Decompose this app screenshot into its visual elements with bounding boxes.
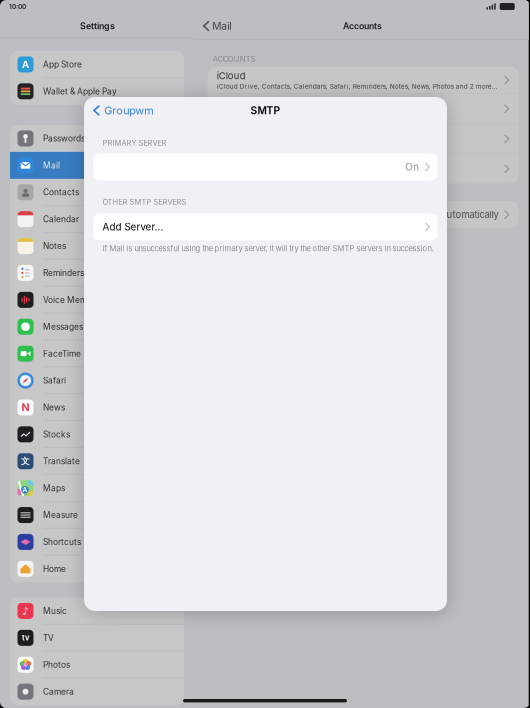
staticText: Mail — [212, 20, 231, 32]
staticText: Mail — [43, 160, 60, 170]
staticText: Home — [43, 564, 66, 574]
staticText: Maps — [43, 483, 65, 493]
button[interactable]: A — [10, 51, 184, 78]
staticText: Shortcuts — [43, 537, 81, 547]
button[interactable]: Mail — [199, 15, 235, 37]
staticText: If Mail is unsuccessful using the primar… — [102, 244, 433, 253]
staticText: Groupwm — [104, 104, 154, 117]
button[interactable]: Photos — [10, 651, 184, 678]
staticText: SMTP — [250, 104, 280, 117]
button[interactable]: Groupwm — [89, 99, 158, 121]
button[interactable]: Voice Memos — [10, 286, 184, 313]
staticText: App Store — [43, 59, 82, 69]
button[interactable]: Calendar — [10, 206, 184, 233]
button[interactable]: N — [10, 394, 184, 421]
button[interactable]: iCloud — [208, 67, 519, 93]
staticText: Accounts — [343, 21, 382, 31]
button[interactable]: Stocks — [10, 421, 184, 448]
staticText: On — [405, 161, 419, 173]
staticText: Calendar — [43, 214, 79, 224]
button[interactable]: Add Server... — [93, 214, 437, 240]
button[interactable]: Measure — [10, 502, 184, 528]
staticText: Stocks — [43, 429, 70, 439]
button[interactable]: Shortcuts — [10, 528, 184, 555]
button[interactable]: Safari — [10, 367, 184, 394]
staticText: FaceTime — [43, 349, 81, 359]
button[interactable]: Reminders — [10, 259, 184, 286]
button[interactable]: A — [10, 475, 184, 502]
staticText: ACCOUNTS — [213, 54, 256, 63]
button[interactable]: Automatically — [208, 201, 519, 228]
button[interactable]: Passwords — [10, 125, 184, 152]
button[interactable] — [208, 154, 519, 183]
staticText: Measure — [43, 510, 78, 520]
staticText: Add Server... — [102, 221, 163, 233]
staticText: TV — [43, 633, 54, 643]
staticText: Music — [43, 606, 67, 616]
staticText: iCloud Drive, Contacts, Calendars, Safar… — [217, 82, 498, 90]
button[interactable]: tv — [10, 624, 184, 651]
staticText: Settings — [80, 21, 115, 31]
staticText: Translate — [43, 456, 80, 466]
button[interactable]: Contacts — [10, 179, 184, 206]
button[interactable] — [208, 124, 519, 153]
staticText: Voice Memos — [43, 295, 96, 305]
staticText: N — [21, 401, 29, 414]
staticText: Camera — [43, 687, 74, 697]
button[interactable]: Camera — [10, 678, 184, 705]
staticText: Notes — [43, 241, 66, 251]
staticText: PRIMARY SERVER — [102, 138, 166, 147]
button[interactable]: ♪ — [10, 597, 184, 624]
button[interactable]: FaceTime — [10, 340, 184, 367]
staticText: iCloud — [217, 70, 246, 81]
button[interactable]: Home — [10, 555, 184, 582]
staticText: tv — [22, 633, 29, 642]
staticText: News — [43, 402, 65, 412]
staticText: 10:00 — [9, 2, 26, 10]
staticText: Passwords — [43, 133, 85, 143]
staticText: 文 — [21, 456, 30, 467]
staticText: Photos — [43, 660, 70, 670]
staticText: A — [22, 59, 29, 70]
staticText: A — [22, 486, 27, 494]
staticText: OTHER SMTP SERVERS — [102, 197, 186, 206]
button[interactable]: Wallet & Apple Pay — [10, 78, 184, 105]
staticText: Automatically — [440, 209, 498, 220]
button[interactable] — [208, 94, 519, 123]
staticText: Safari — [43, 375, 66, 386]
staticText: Contacts — [43, 187, 79, 197]
staticText: Wallet & Apple Pay — [43, 86, 117, 96]
button[interactable]: Notes — [10, 233, 184, 259]
button[interactable]: 文 — [10, 448, 184, 475]
button[interactable]: Messages — [10, 313, 184, 340]
staticText: ♪ — [22, 605, 29, 617]
staticText: Messages — [43, 322, 83, 332]
staticText: Reminders — [43, 268, 84, 278]
button[interactable]: Mail — [10, 152, 184, 179]
